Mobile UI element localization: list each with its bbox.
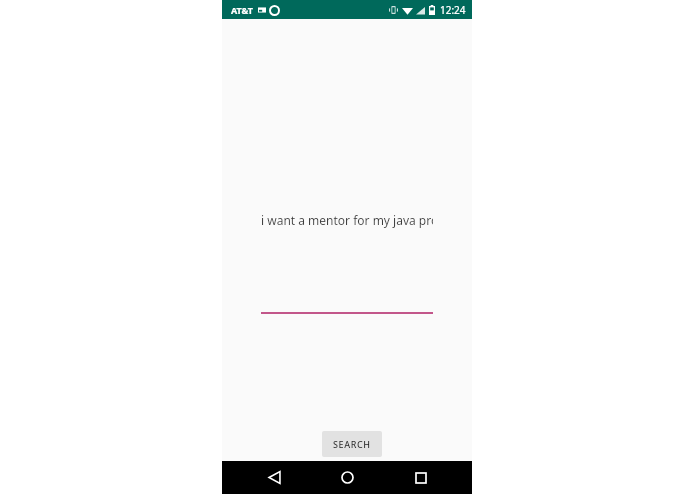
button[interactable]: Recent apps [399,461,443,494]
button[interactable]: i want a mentor for my java project [261,212,433,314]
staticText: SEARCH [333,438,371,450]
button[interactable]: SEARCH [322,431,382,457]
staticText: 12:24 [440,3,466,17]
button[interactable]: Back [252,461,296,494]
staticText: AT&T [231,4,254,16]
staticText: i want a mentor for my java project [261,212,433,228]
button[interactable]: Home [325,461,369,494]
